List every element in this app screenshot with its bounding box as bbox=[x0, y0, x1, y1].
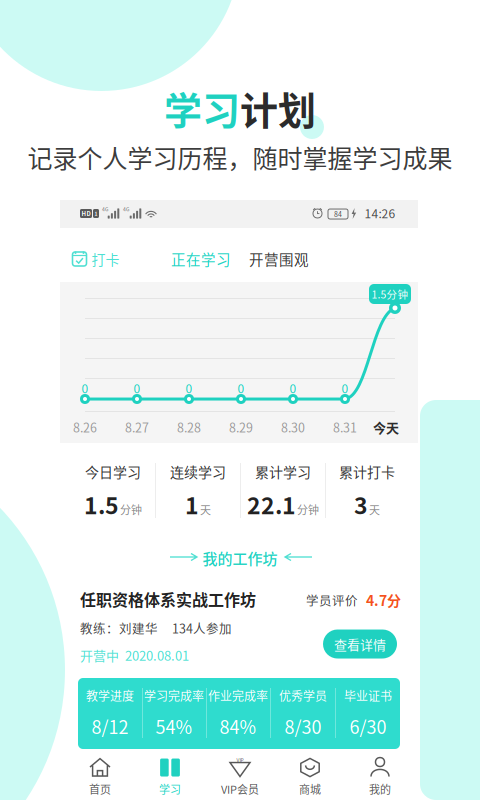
button[interactable]: 学习 bbox=[205, 378, 275, 422]
staticText: 0 bbox=[81, 379, 88, 397]
staticText: 开营围观 bbox=[249, 248, 309, 269]
staticText: VIP会员 bbox=[221, 781, 259, 797]
staticText: 8.27 bbox=[125, 418, 149, 436]
staticText: 天 bbox=[200, 501, 211, 517]
button[interactable]: VIP bbox=[205, 378, 275, 422]
staticText: 4.7分 bbox=[366, 590, 401, 610]
staticText: VIP bbox=[236, 756, 243, 764]
staticText: 4G bbox=[102, 205, 108, 213]
button[interactable]: 商城 bbox=[205, 378, 275, 422]
staticText: 作业完成率 bbox=[208, 687, 268, 704]
button[interactable]: 我的 bbox=[205, 378, 275, 422]
staticText: 任职资格体系实战工作坊 bbox=[80, 587, 256, 611]
staticText: 开营中 bbox=[80, 646, 119, 664]
staticText: 8.28 bbox=[177, 418, 201, 436]
staticText: 教练：刘建华 bbox=[80, 619, 158, 637]
staticText: HD bbox=[81, 209, 90, 218]
staticText: 14:26 bbox=[364, 204, 395, 222]
staticText: 学习 bbox=[159, 781, 181, 797]
staticText: 毕业证书 bbox=[344, 687, 392, 704]
staticText: 天 bbox=[369, 501, 380, 517]
staticText: 1 bbox=[185, 487, 199, 521]
staticText: 商城 bbox=[299, 781, 321, 797]
button[interactable]: 首页 bbox=[205, 378, 275, 422]
staticText: 84% bbox=[219, 713, 256, 739]
staticText: 4G bbox=[123, 205, 129, 213]
staticText: 0 bbox=[133, 379, 140, 397]
staticText: 学习完成率 bbox=[144, 687, 204, 704]
button[interactable]: 开营围观 bbox=[206, 385, 274, 414]
staticText: 84 bbox=[334, 209, 342, 219]
staticText: 8.31 bbox=[333, 418, 357, 436]
staticText: 0 bbox=[237, 379, 244, 397]
staticText: 今日学习 bbox=[85, 461, 141, 481]
staticText: 学习 bbox=[164, 80, 240, 135]
staticText: 54% bbox=[155, 713, 192, 739]
staticText: 查看详情 bbox=[334, 635, 386, 653]
staticText: 我的 bbox=[369, 781, 391, 797]
staticText: 8/12 bbox=[91, 713, 128, 739]
staticText: 连续学习 bbox=[170, 461, 226, 481]
staticText: 8/30 bbox=[284, 713, 321, 739]
button[interactable]: 打卡 bbox=[212, 386, 267, 414]
staticText: 正在学习 bbox=[171, 248, 231, 269]
staticText: 首页 bbox=[89, 781, 111, 797]
staticText: 教学进度 bbox=[86, 687, 134, 704]
staticText: 6/30 bbox=[349, 713, 386, 739]
staticText: 8.30 bbox=[281, 418, 305, 436]
staticText: 0 bbox=[289, 379, 296, 397]
staticText: 134人参加 bbox=[172, 619, 232, 637]
staticText: 优秀学员 bbox=[279, 687, 327, 704]
staticText: 3 bbox=[354, 487, 368, 521]
staticText: 记录个人学习历程，随时掌握学习成果 bbox=[27, 139, 452, 175]
staticText: 8.26 bbox=[73, 418, 97, 436]
staticText: 2020.08.01 bbox=[125, 646, 189, 664]
staticText: 我的工作坊 bbox=[202, 547, 277, 569]
staticText: 分钟 bbox=[297, 501, 319, 517]
button[interactable]: 查看详情 bbox=[203, 385, 277, 414]
staticText: 今天 bbox=[373, 418, 399, 436]
staticText: 22.1 bbox=[247, 487, 296, 521]
staticText: 学员评价 bbox=[306, 591, 358, 609]
staticText: 0 bbox=[185, 379, 192, 397]
staticText: 1 bbox=[94, 210, 97, 217]
staticText: 1.5 bbox=[84, 487, 119, 521]
staticText: 累计打卡 bbox=[339, 461, 395, 481]
staticText: 计划 bbox=[240, 80, 316, 135]
staticText: 打卡 bbox=[91, 249, 119, 269]
staticText: 8.29 bbox=[229, 418, 253, 436]
button[interactable]: 正在学习 bbox=[206, 385, 274, 414]
staticText: 0 bbox=[341, 379, 348, 397]
staticText: 累计学习 bbox=[255, 461, 311, 481]
staticText: 1.5分钟 bbox=[371, 286, 408, 302]
staticText: 分钟 bbox=[120, 501, 142, 517]
